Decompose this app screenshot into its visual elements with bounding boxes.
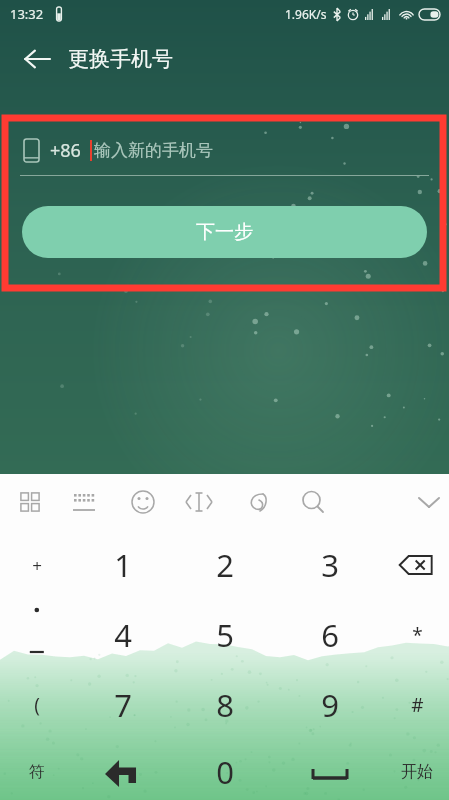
button[interactable]: 8 xyxy=(181,672,269,738)
button[interactable]: Search xyxy=(291,474,335,526)
button[interactable]: 0 xyxy=(181,739,269,800)
staticText: +86 xyxy=(50,138,81,163)
button[interactable]: Keyboard modes xyxy=(8,474,52,526)
staticText: 8 xyxy=(216,684,234,726)
staticText: 6 xyxy=(321,614,339,656)
button[interactable]: 4 xyxy=(79,602,167,668)
staticText: 2 xyxy=(216,544,234,586)
staticText: # xyxy=(411,692,424,718)
button[interactable]: 符 xyxy=(0,739,81,800)
button[interactable]: Switch keyboard xyxy=(62,474,106,526)
button[interactable]: 6 xyxy=(286,602,374,668)
staticText: 3 xyxy=(321,544,339,586)
button[interactable]: Move cursor xyxy=(177,474,221,526)
staticText: 7 xyxy=(114,684,132,726)
button[interactable]: +86 xyxy=(24,134,425,166)
staticText: * xyxy=(412,622,423,648)
button[interactable]: ( xyxy=(0,672,81,738)
staticText: 1 xyxy=(114,544,132,586)
button[interactable]: 1 xyxy=(79,532,167,598)
button[interactable]: Emoji xyxy=(121,474,165,526)
staticText: 符 xyxy=(29,762,45,782)
button[interactable]: Backspace xyxy=(373,532,449,598)
staticText: 开始 xyxy=(401,762,433,782)
button[interactable]: Minus xyxy=(0,602,81,668)
button[interactable]: 7 xyxy=(79,672,167,738)
button[interactable]: 3 xyxy=(286,532,374,598)
staticText: 5 xyxy=(216,614,234,656)
button[interactable]: Clipboard xyxy=(235,474,279,526)
button[interactable]: Hide keyboard xyxy=(403,474,447,526)
button[interactable]: Enter xyxy=(79,739,167,800)
button[interactable]: Back xyxy=(14,36,60,82)
staticText: 13:32 xyxy=(10,5,44,23)
button[interactable]: 5 xyxy=(181,602,269,668)
staticText: 1.96K/s xyxy=(285,6,327,22)
button[interactable]: Space xyxy=(286,739,374,800)
button[interactable]: 下一步 xyxy=(22,206,427,258)
button[interactable]: * xyxy=(373,602,449,668)
staticText: 4 xyxy=(114,614,132,656)
button[interactable]: # xyxy=(373,672,449,738)
staticText: 更换手机号 xyxy=(68,46,173,72)
button[interactable]: 开始 xyxy=(373,739,449,800)
staticText: 输入新的手机号 xyxy=(94,140,213,161)
button[interactable]: + xyxy=(0,532,81,598)
staticText: ( xyxy=(34,692,40,718)
staticText: + xyxy=(32,554,42,577)
staticText: 9 xyxy=(321,684,339,726)
staticText: 下一步 xyxy=(196,220,253,244)
staticText: 0 xyxy=(216,751,234,793)
button[interactable]: 9 xyxy=(286,672,374,738)
button[interactable]: 2 xyxy=(181,532,269,598)
